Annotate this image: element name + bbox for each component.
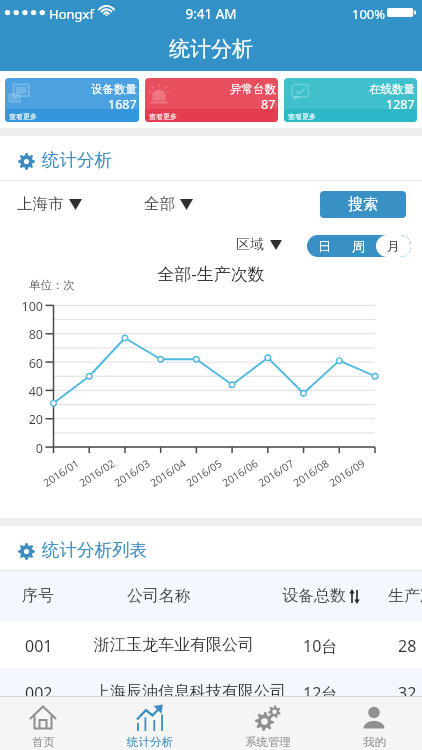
staticText: 浙江玉龙车业有限公司	[94, 635, 254, 655]
staticText: 查看更多	[288, 112, 316, 121]
button[interactable]: 月	[376, 235, 411, 257]
staticText: 2016/05	[183, 456, 225, 490]
staticText: 2016/06	[219, 456, 261, 490]
staticText: 全部	[144, 194, 175, 214]
staticText: 10台	[303, 635, 338, 657]
staticText: 单位：次	[29, 278, 75, 292]
staticText: Hongxf	[49, 5, 94, 23]
button[interactable]: 003	[0, 715, 422, 750]
staticText: 日	[318, 238, 331, 254]
button[interactable]: 设备数量	[5, 78, 139, 122]
staticText: 区域	[236, 236, 264, 254]
staticText: 12台	[303, 682, 338, 704]
staticText: 2016/02	[76, 456, 118, 490]
staticText: 1287	[386, 96, 415, 113]
button[interactable]: 周	[341, 235, 376, 257]
staticText: 上海辰油信息科技有限公司	[94, 682, 286, 702]
staticText: 全部-生产次数	[0, 262, 422, 285]
staticText: 2016/07	[255, 456, 297, 490]
staticText: 我的	[363, 735, 386, 749]
staticText: 2016/01	[40, 456, 82, 490]
button[interactable]: 全部	[144, 194, 193, 214]
staticText: 统计分析	[127, 735, 173, 749]
staticText: 87	[261, 96, 276, 113]
staticText: 0	[0, 440, 43, 457]
staticText: 序号	[22, 586, 54, 606]
staticText: 2016/03	[111, 456, 153, 490]
staticText: 查看更多	[149, 112, 177, 121]
staticText: 002	[25, 682, 53, 704]
staticText: 统计分析	[0, 36, 422, 62]
button[interactable]: 搜索	[320, 191, 406, 218]
staticText: 异常台数	[230, 82, 276, 96]
staticText: 设备数量	[91, 82, 137, 96]
staticText: 北京华宇科技有限公司	[94, 729, 254, 749]
button[interactable]: 日	[307, 235, 341, 257]
button[interactable]: 我的	[329, 697, 419, 750]
staticText: 100%	[352, 5, 386, 23]
staticText: 公司名称	[127, 586, 191, 606]
staticText: 80	[0, 326, 43, 343]
staticText: 上海市	[17, 194, 64, 214]
staticText: 100	[0, 298, 43, 315]
button[interactable]: 上海市	[17, 194, 82, 214]
staticText: 在线数量	[369, 82, 415, 96]
staticText: 设备总数	[282, 586, 346, 606]
staticText: 2016/08	[290, 456, 332, 490]
staticText: 32	[398, 682, 417, 704]
staticText: 40	[0, 383, 43, 400]
staticText: 统计分析列表	[42, 539, 147, 561]
staticText: 查看更多	[9, 112, 37, 121]
staticText: 首页	[32, 735, 55, 749]
staticText: 001	[25, 635, 53, 657]
staticText: 9:41 AM	[0, 5, 422, 23]
staticText: 统计分析	[42, 149, 112, 171]
button[interactable]: 在线数量	[284, 78, 417, 122]
staticText: 月	[387, 238, 400, 254]
staticText: 60	[0, 355, 43, 372]
staticText: 周	[352, 238, 365, 254]
staticText: 20	[0, 411, 43, 428]
button[interactable]: 001	[0, 621, 422, 668]
staticText: 28	[398, 635, 417, 657]
staticText: 系统管理	[245, 735, 291, 749]
staticText: 生产次数	[388, 586, 422, 606]
staticText: 2016/04	[147, 456, 189, 490]
staticText: 1687	[108, 96, 137, 113]
button[interactable]: 系统管理	[223, 697, 313, 750]
button[interactable]: 002	[0, 668, 422, 715]
staticText: 搜索	[348, 195, 378, 214]
staticText: 2016/09	[326, 456, 368, 490]
button[interactable]: 异常台数	[145, 78, 278, 122]
button[interactable]: 首页	[0, 697, 88, 750]
button[interactable]: 区域	[236, 236, 282, 254]
staticText: 003	[25, 729, 53, 750]
button[interactable]: 统计分析	[105, 697, 195, 750]
